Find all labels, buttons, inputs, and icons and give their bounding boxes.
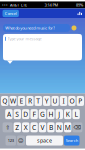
button[interactable]: V xyxy=(39,122,46,132)
staticText: U xyxy=(53,96,58,105)
staticText: Q xyxy=(2,96,7,105)
button[interactable]: Search xyxy=(64,136,79,146)
button[interactable]: I xyxy=(60,96,67,106)
button[interactable]: X xyxy=(22,122,29,132)
staticText: G xyxy=(40,110,45,119)
button[interactable]: J xyxy=(56,109,63,119)
button[interactable]: Y xyxy=(43,96,50,106)
button[interactable]: Cancel xyxy=(2,10,19,17)
staticText: Search xyxy=(66,138,78,143)
staticText: Z xyxy=(15,123,19,132)
staticText: ••• AT&T LTE xyxy=(2,2,27,8)
staticText: C xyxy=(32,123,36,132)
button[interactable]: D xyxy=(22,109,29,119)
button[interactable]: ☺ xyxy=(17,136,25,146)
staticText: O xyxy=(69,96,74,105)
button[interactable]: Q xyxy=(1,96,8,106)
button[interactable]: B xyxy=(47,122,55,132)
staticText: I xyxy=(62,96,64,105)
staticText: What do you need music for? xyxy=(5,25,55,31)
staticText: V xyxy=(40,123,44,132)
staticText: Y xyxy=(45,96,49,105)
staticText: ⌫ xyxy=(73,124,81,130)
staticText: N xyxy=(57,123,62,132)
button[interactable]: Audio levels xyxy=(77,11,82,16)
button[interactable]: ⌫ xyxy=(72,122,82,132)
button[interactable]: O xyxy=(68,96,76,106)
button[interactable]: R xyxy=(26,96,34,106)
staticText: M xyxy=(65,123,71,132)
button[interactable]: Z xyxy=(14,122,21,132)
button[interactable]: T xyxy=(35,96,42,106)
staticText: Cancel xyxy=(5,11,17,16)
staticText: R xyxy=(28,96,32,105)
button[interactable]: M xyxy=(64,122,71,132)
staticText: X xyxy=(24,123,28,132)
button[interactable]: K xyxy=(64,109,71,119)
staticText: W xyxy=(10,96,16,105)
button[interactable]: ⇧ xyxy=(3,122,13,132)
staticText: ☺ xyxy=(18,137,24,144)
button[interactable]: P xyxy=(77,96,84,106)
staticText: B xyxy=(49,123,53,132)
button[interactable]: F xyxy=(30,109,38,119)
staticText: J xyxy=(58,110,60,119)
staticText: 123 xyxy=(8,138,14,143)
staticText: T xyxy=(36,96,40,105)
button[interactable]: U xyxy=(51,96,59,106)
button[interactable]: C xyxy=(30,122,38,132)
button[interactable]: 123 xyxy=(5,136,16,146)
staticText: 3:14 PM xyxy=(44,2,58,8)
button[interactable]: H xyxy=(47,109,55,119)
staticText: P xyxy=(78,96,82,105)
button[interactable]: A xyxy=(5,109,13,119)
button[interactable]: space xyxy=(26,136,63,146)
staticText: K xyxy=(66,110,70,119)
staticText: D xyxy=(23,110,28,119)
staticText: space xyxy=(37,137,52,144)
staticText: F xyxy=(33,110,36,119)
staticText: E xyxy=(19,96,23,105)
button[interactable]: W xyxy=(9,96,17,106)
button[interactable]: L xyxy=(72,109,80,119)
button[interactable]: G xyxy=(39,109,46,119)
staticText: 89% xyxy=(76,2,83,8)
button[interactable]: E xyxy=(18,96,25,106)
button[interactable]: S xyxy=(14,109,21,119)
staticText: ⇧ xyxy=(6,124,10,130)
staticText: H xyxy=(48,110,53,119)
staticText: A xyxy=(7,110,11,119)
staticText: S xyxy=(15,110,19,119)
staticText: Type your message xyxy=(7,36,41,41)
button[interactable]: N xyxy=(56,122,63,132)
staticText: L xyxy=(75,110,78,119)
